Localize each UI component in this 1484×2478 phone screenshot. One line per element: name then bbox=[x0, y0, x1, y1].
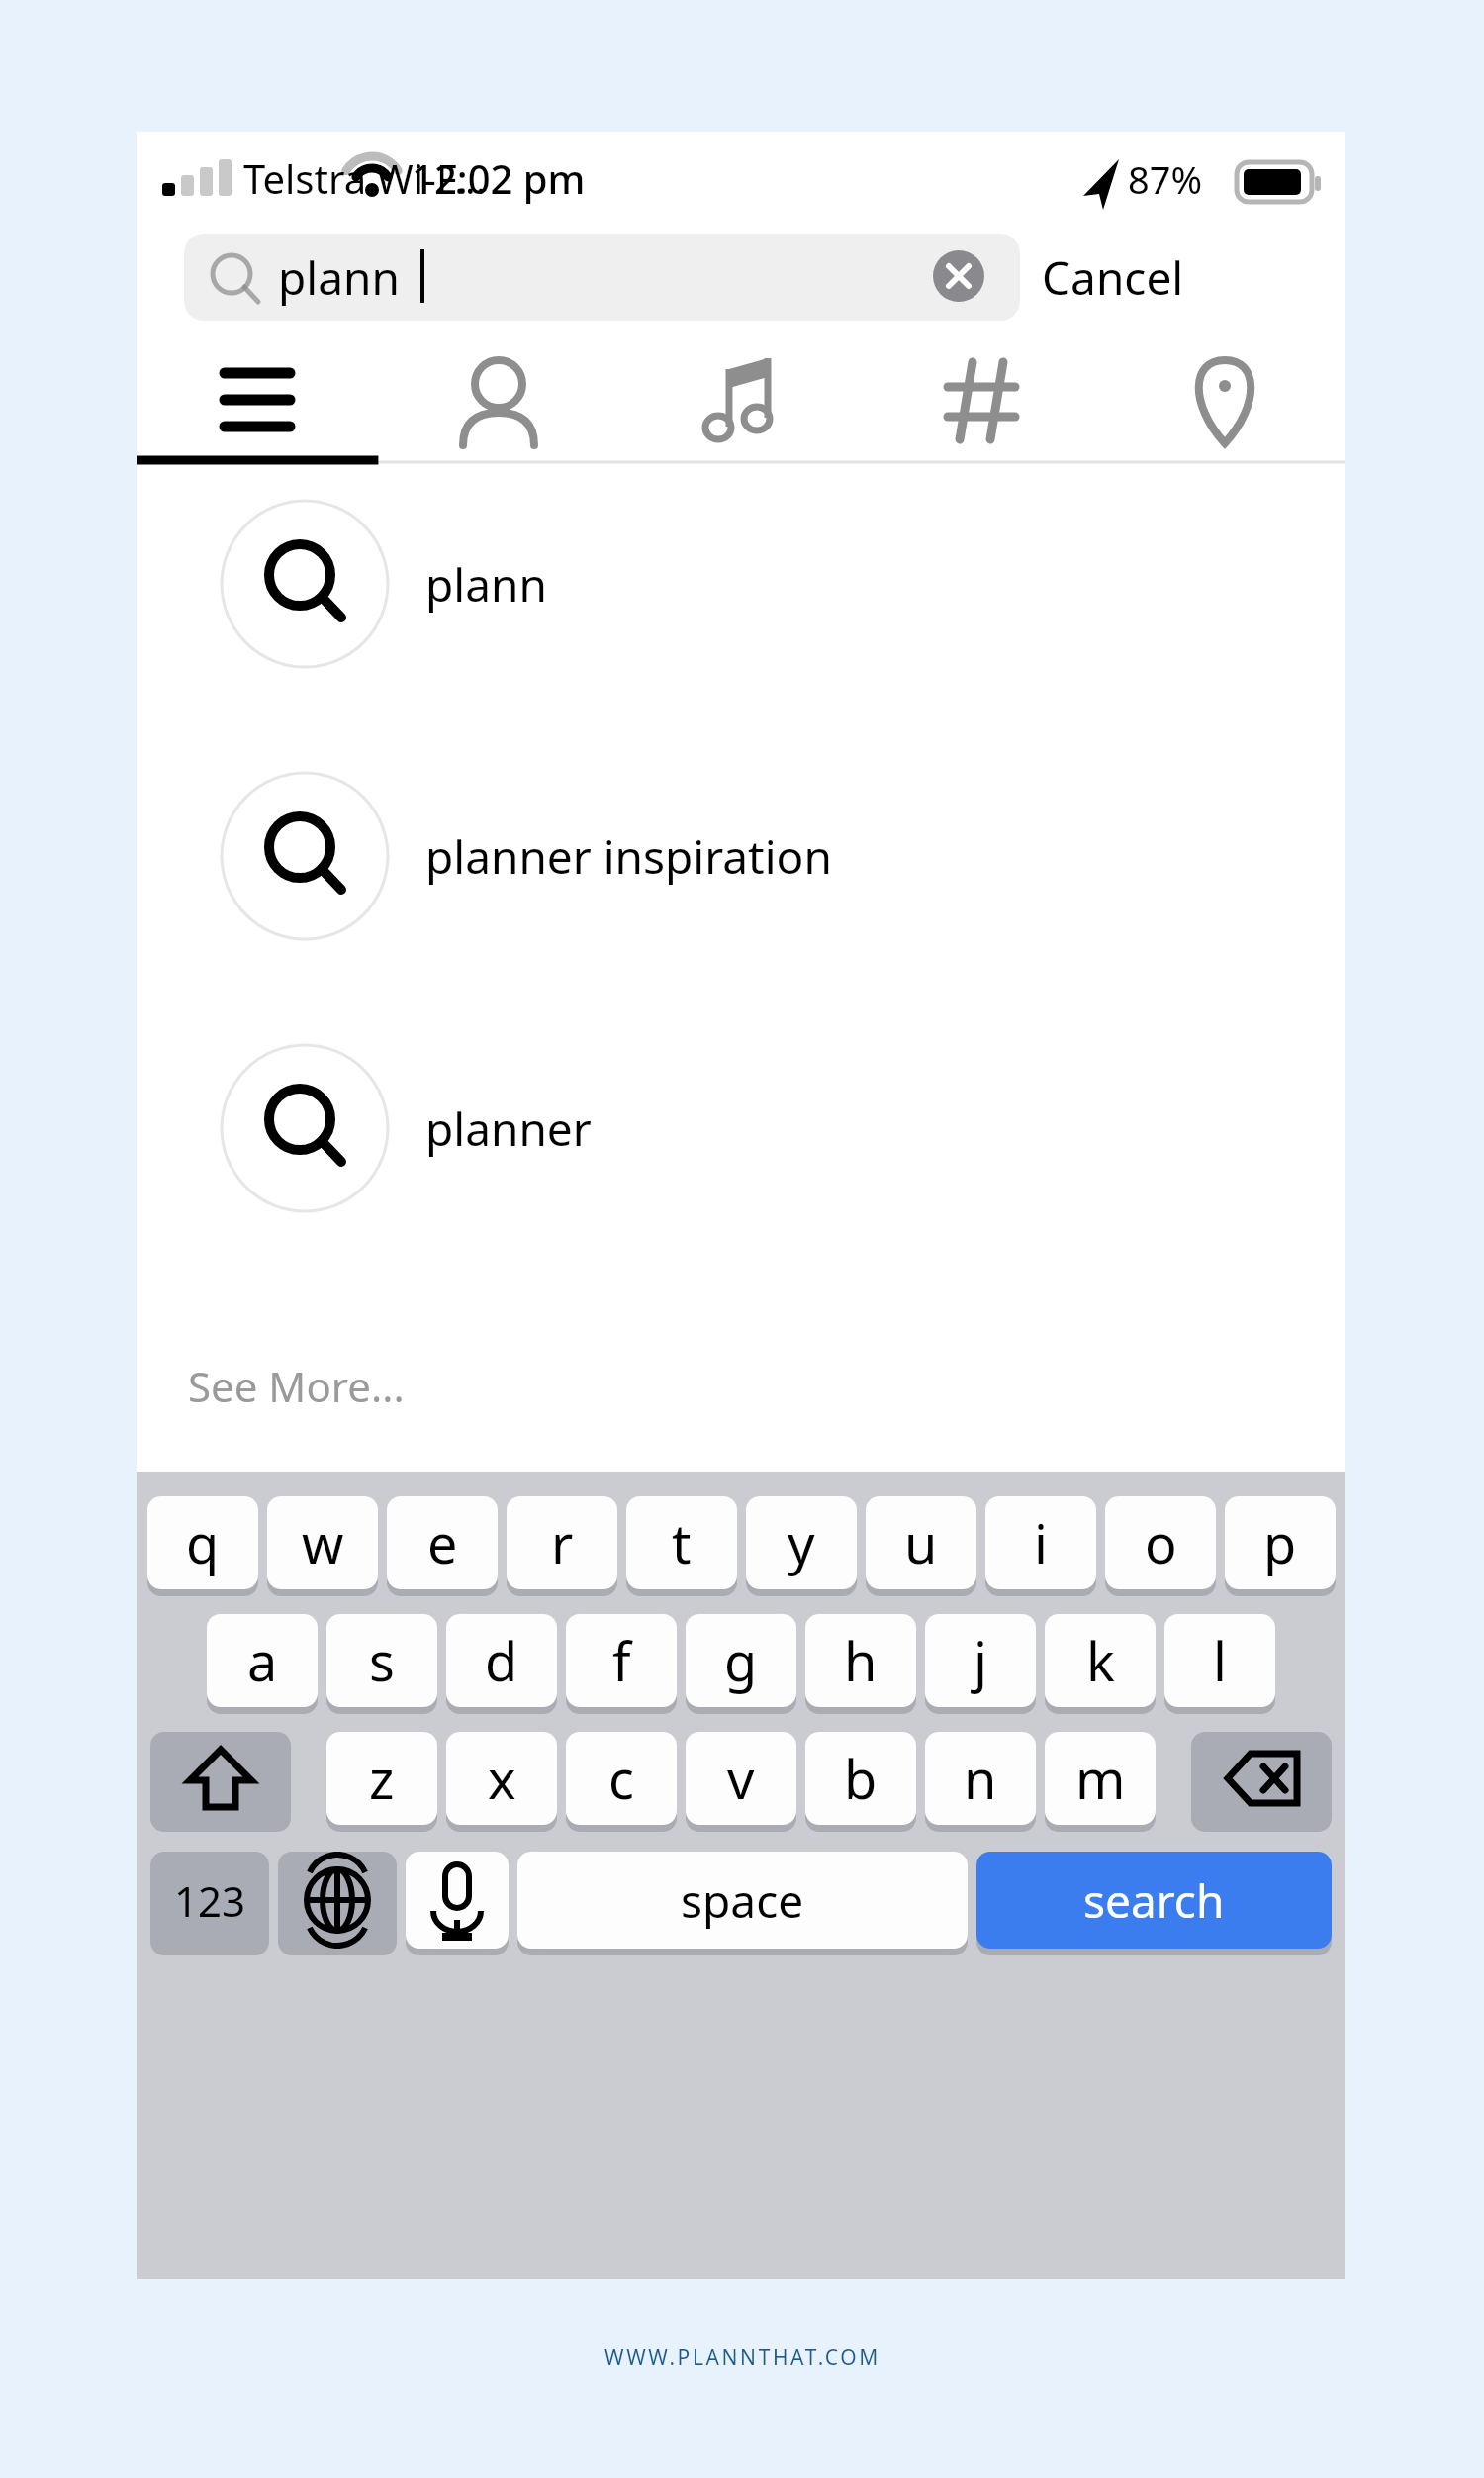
button[interactable]: Places bbox=[1104, 344, 1345, 465]
button[interactable]: b bbox=[805, 1732, 916, 1825]
staticText: u bbox=[904, 1506, 938, 1579]
button[interactable]: i bbox=[985, 1496, 1096, 1589]
button[interactable]: w bbox=[267, 1496, 378, 1589]
button[interactable]: u bbox=[866, 1496, 976, 1589]
button[interactable]: planner bbox=[137, 1029, 1345, 1227]
button[interactable]: Cancel bbox=[1042, 234, 1304, 321]
button[interactable]: Backspace bbox=[1191, 1732, 1332, 1825]
staticText: h bbox=[844, 1624, 878, 1697]
button[interactable]: space bbox=[517, 1852, 968, 1949]
button[interactable]: Shift bbox=[150, 1732, 291, 1825]
button[interactable]: e bbox=[387, 1496, 498, 1589]
button[interactable]: k bbox=[1045, 1614, 1156, 1707]
staticText: 12:02 pm bbox=[412, 151, 586, 205]
staticText: 87% bbox=[1128, 153, 1203, 205]
button[interactable]: h bbox=[805, 1614, 916, 1707]
button[interactable]: m bbox=[1045, 1732, 1156, 1825]
button[interactable]: x bbox=[446, 1732, 557, 1825]
staticText: Cancel bbox=[1042, 246, 1184, 309]
staticText: search bbox=[1083, 1869, 1225, 1932]
button[interactable]: q bbox=[147, 1496, 258, 1589]
staticText: planner inspiration bbox=[425, 825, 832, 888]
staticText: WWW.PLANNTHAT.COM bbox=[604, 2343, 881, 2372]
button[interactable]: j bbox=[925, 1614, 1036, 1707]
button[interactable]: y bbox=[746, 1496, 857, 1589]
staticText: a bbox=[247, 1624, 278, 1697]
staticText: d bbox=[485, 1624, 518, 1697]
staticText: 123 bbox=[174, 1872, 246, 1929]
staticText: planner bbox=[425, 1097, 592, 1160]
button[interactable]: People bbox=[378, 344, 619, 465]
staticText: z bbox=[369, 1742, 395, 1815]
button[interactable]: See More... bbox=[137, 1326, 1345, 1445]
staticText: m bbox=[1075, 1742, 1126, 1815]
staticText: t bbox=[672, 1506, 692, 1579]
staticText: Telstra Wi-F... bbox=[243, 151, 487, 205]
button[interactable]: g bbox=[686, 1614, 796, 1707]
button[interactable]: r bbox=[507, 1496, 617, 1589]
button[interactable]: f bbox=[566, 1614, 677, 1707]
button[interactable]: Audio bbox=[620, 344, 862, 465]
staticText: n bbox=[964, 1742, 997, 1815]
staticText: q bbox=[186, 1506, 220, 1579]
button[interactable]: Change keyboard bbox=[278, 1852, 397, 1949]
button[interactable]: plann bbox=[137, 485, 1345, 683]
staticText: k bbox=[1086, 1624, 1115, 1697]
staticText: g bbox=[724, 1624, 758, 1697]
button[interactable]: a bbox=[207, 1614, 318, 1707]
button[interactable]: planner inspiration bbox=[137, 757, 1345, 955]
button[interactable]: o bbox=[1105, 1496, 1216, 1589]
button[interactable]: l bbox=[1164, 1614, 1275, 1707]
staticText: See More... bbox=[188, 1358, 405, 1414]
button[interactable]: All bbox=[137, 344, 378, 465]
staticText: plann bbox=[425, 553, 547, 616]
staticText: plann bbox=[278, 246, 400, 309]
button[interactable]: v bbox=[686, 1732, 796, 1825]
button[interactable]: plann bbox=[184, 234, 1020, 321]
staticText: v bbox=[727, 1742, 755, 1815]
staticText: f bbox=[612, 1624, 631, 1697]
button[interactable]: 123 bbox=[150, 1852, 269, 1949]
staticText: b bbox=[844, 1742, 878, 1815]
staticText: j bbox=[974, 1624, 987, 1697]
button[interactable]: Tags bbox=[862, 344, 1103, 465]
staticText: e bbox=[427, 1506, 458, 1579]
staticText: p bbox=[1263, 1506, 1297, 1579]
button[interactable]: c bbox=[566, 1732, 677, 1825]
button[interactable]: d bbox=[446, 1614, 557, 1707]
staticText: i bbox=[1034, 1506, 1048, 1579]
button[interactable]: p bbox=[1225, 1496, 1336, 1589]
staticText: w bbox=[302, 1506, 344, 1579]
button[interactable]: Dictate bbox=[406, 1852, 509, 1949]
button[interactable]: z bbox=[326, 1732, 437, 1825]
staticText: o bbox=[1145, 1506, 1177, 1579]
staticText: s bbox=[369, 1624, 395, 1697]
button[interactable]: s bbox=[326, 1614, 437, 1707]
staticText: r bbox=[551, 1506, 574, 1579]
staticText: c bbox=[608, 1742, 634, 1815]
button[interactable]: n bbox=[925, 1732, 1036, 1825]
staticText: y bbox=[788, 1506, 815, 1579]
staticText: space bbox=[681, 1869, 804, 1932]
staticText: x bbox=[488, 1742, 516, 1815]
button[interactable]: t bbox=[626, 1496, 737, 1589]
button[interactable]: search bbox=[976, 1852, 1332, 1949]
staticText: l bbox=[1213, 1624, 1227, 1697]
